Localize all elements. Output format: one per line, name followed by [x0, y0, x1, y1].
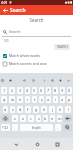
button[interactable]: c [28, 115, 34, 122]
staticText: p [68, 97, 71, 102]
button[interactable]: Back [11, 139, 21, 149]
staticText: 0 [68, 88, 71, 93]
staticText: 4 [26, 88, 29, 93]
button[interactable]: 8 [53, 87, 58, 94]
staticText: v [38, 116, 40, 121]
button[interactable]: z [12, 115, 18, 122]
staticText: 1 [3, 88, 6, 93]
staticText: 7 [47, 88, 50, 93]
button[interactable]: n [50, 115, 55, 122]
staticText: e [19, 97, 22, 102]
staticText: z [14, 116, 16, 121]
staticText: t [34, 97, 36, 102]
button[interactable]: Back [0, 5, 10, 15]
button[interactable]: 0 [67, 87, 72, 94]
button[interactable]: i [53, 96, 58, 103]
staticText: 3 [19, 88, 22, 93]
button[interactable]: 6 [39, 87, 44, 94]
staticText: o [61, 97, 64, 102]
button[interactable]: Match whole words [0, 53, 73, 58]
button[interactable]: 3 [17, 87, 23, 94]
button[interactable]: j [49, 106, 55, 113]
button[interactable]: More [66, 78, 71, 83]
button[interactable]: GIF [22, 78, 27, 83]
button[interactable]: Clipboard [31, 78, 36, 83]
staticText: k [59, 107, 62, 112]
staticText: 5 [33, 88, 36, 93]
staticText: a [4, 107, 7, 112]
button[interactable]: 4 [25, 87, 30, 94]
button[interactable]: u [46, 96, 51, 103]
button[interactable]: Voice input [42, 78, 47, 83]
button[interactable]: 5 [32, 87, 37, 94]
staticText: l [68, 107, 69, 112]
button[interactable]: a [3, 106, 8, 113]
button[interactable]: Recents [52, 139, 62, 149]
button[interactable]: g [33, 106, 39, 113]
button[interactable]: 9 [60, 87, 65, 94]
staticText: w [11, 97, 14, 102]
staticText: 8 [54, 88, 57, 93]
button[interactable]: k [57, 106, 63, 113]
staticText: , [14, 125, 16, 130]
button[interactable]: l [65, 106, 71, 113]
button[interactable]: English [20, 124, 53, 131]
staticText: 4:01 [1, 1, 8, 5]
button[interactable]: 2 [9, 87, 15, 94]
staticText: n [51, 116, 54, 121]
button[interactable]: Stickers [8, 78, 13, 83]
button[interactable]: m [57, 115, 62, 122]
staticText: 6 [40, 88, 43, 93]
button[interactable]: Backspace [64, 115, 72, 122]
button[interactable]: s [10, 106, 15, 113]
staticText: 2 [11, 88, 14, 93]
button[interactable]: q [1, 96, 7, 103]
button[interactable]: y [39, 96, 44, 103]
button[interactable]: h [41, 106, 47, 113]
button[interactable]: Match accents and case [0, 61, 73, 66]
button[interactable]: w [9, 96, 15, 103]
staticText: 0/0 [4, 39, 9, 43]
button[interactable]: SEARCH [54, 44, 70, 50]
staticText: g [35, 107, 38, 112]
button[interactable]: Home [32, 139, 42, 149]
button[interactable]: Shift [1, 115, 10, 122]
button[interactable]: b [43, 115, 48, 122]
button[interactable]: t [32, 96, 37, 103]
button[interactable]: f [25, 106, 31, 113]
button[interactable]: 7 [46, 87, 51, 94]
button[interactable]: , [12, 124, 18, 131]
button[interactable]: p [67, 96, 72, 103]
button[interactable]: . [55, 124, 61, 131]
button[interactable]: o [60, 96, 65, 103]
button[interactable]: Google Lens [0, 78, 5, 83]
button[interactable]: ?123 [1, 124, 10, 131]
button[interactable]: 1 [1, 87, 7, 94]
staticText: ?123 [2, 126, 9, 130]
button[interactable]: e [17, 96, 23, 103]
staticText: i [55, 97, 56, 102]
button[interactable]: v [36, 115, 41, 122]
staticText: Search [0, 17, 73, 23]
staticText: x [22, 116, 25, 121]
staticText: c [30, 116, 32, 121]
button[interactable]: x [20, 115, 26, 122]
staticText: j [52, 107, 53, 112]
button[interactable]: Settings [50, 78, 55, 83]
staticText: b [44, 116, 47, 121]
staticText: r [27, 97, 29, 102]
button[interactable]: r [25, 96, 30, 103]
staticText: m [58, 116, 62, 121]
staticText: SEARCH [57, 45, 68, 49]
staticText: d [19, 107, 22, 112]
staticText: s [12, 107, 14, 112]
staticText: q [3, 97, 6, 102]
staticText: y [41, 97, 43, 102]
staticText: u [47, 97, 50, 102]
button[interactable]: d [17, 106, 23, 113]
staticText: . [57, 125, 59, 130]
button[interactable]: Search [63, 124, 72, 131]
staticText: Search [9, 29, 21, 34]
staticText: Match whole words [9, 53, 41, 58]
button[interactable]: Theme [58, 78, 63, 83]
